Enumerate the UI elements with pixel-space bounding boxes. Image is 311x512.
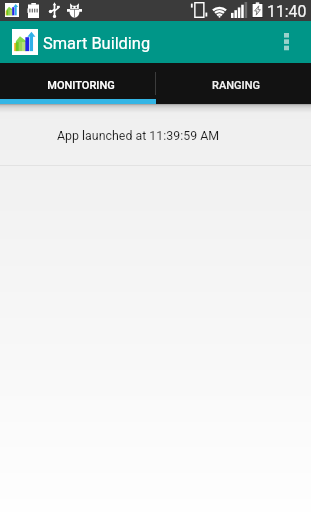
button[interactable]: Smart Building xyxy=(0,21,160,63)
staticText: 11:40 xyxy=(267,2,307,21)
staticText: App launched at 11:39:59 AM xyxy=(57,128,220,143)
button[interactable]: MONITORING xyxy=(0,63,155,104)
staticText: Smart Building xyxy=(43,34,151,53)
staticText: MONITORING xyxy=(47,79,115,92)
button[interactable]: App launched at 11:39:59 AM xyxy=(0,104,311,165)
button[interactable]: More options xyxy=(272,21,302,63)
button[interactable]: RANGING xyxy=(155,63,311,104)
staticText: RANGING xyxy=(212,79,260,92)
